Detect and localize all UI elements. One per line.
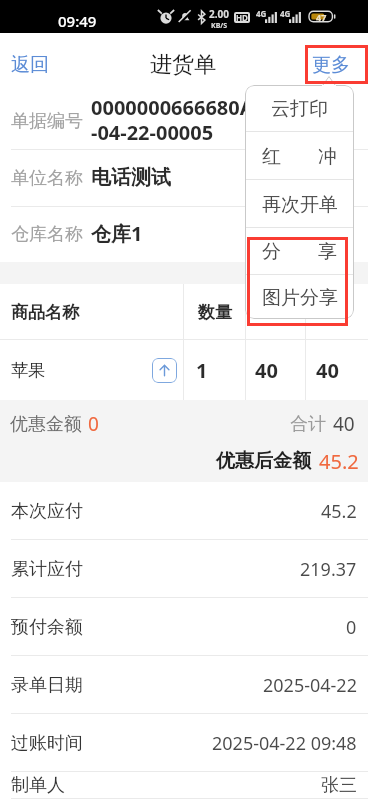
staticText: 苹果 xyxy=(11,360,45,381)
button[interactable]: 更多 xyxy=(306,46,356,84)
staticText: 0000000666680A -04-22-00005 xyxy=(91,94,254,146)
staticText: 数量 xyxy=(198,302,232,323)
button[interactable]: 分 xyxy=(245,228,354,274)
staticText: 返回 xyxy=(11,53,49,77)
staticText: 仓库1 xyxy=(91,220,143,247)
staticText: 45.2 xyxy=(319,448,359,475)
staticText: KB/S xyxy=(211,21,228,31)
staticText: 制单人 xyxy=(11,774,65,797)
button[interactable]: 累计应付 xyxy=(0,540,368,598)
staticText: 单位名称 xyxy=(11,167,91,190)
button[interactable]: 本次应付 xyxy=(0,482,368,540)
staticText: 进货单 xyxy=(150,51,216,79)
staticText: 优惠后金额 xyxy=(216,449,311,473)
staticText: 享 xyxy=(318,240,337,264)
staticText: 单据编号 xyxy=(11,110,91,133)
staticText: 分 xyxy=(262,240,281,264)
staticText: 4G xyxy=(256,8,267,19)
staticText: 冲 xyxy=(318,145,337,169)
button[interactable]: 录单日期 xyxy=(0,656,368,714)
staticText: 40 xyxy=(333,411,355,437)
staticText: 0 xyxy=(346,615,357,640)
staticText: 再次开单 xyxy=(262,193,338,217)
staticText: 40 xyxy=(255,357,278,384)
button[interactable]: 预付余额 xyxy=(0,598,368,656)
button[interactable]: 返回 xyxy=(0,43,61,87)
staticText: 优惠金额 xyxy=(10,413,82,436)
button[interactable]: 制单人 xyxy=(0,772,368,799)
staticText: 本次应付 xyxy=(11,500,83,523)
staticText: HD xyxy=(236,12,248,23)
staticText: 张三 xyxy=(321,774,357,797)
button[interactable]: 再次开单 xyxy=(245,180,354,227)
button[interactable]: 图片分享 xyxy=(245,275,354,319)
staticText: 40 xyxy=(316,357,339,384)
staticText: 云打印 xyxy=(271,97,328,121)
staticText: 219.37 xyxy=(300,557,357,582)
staticText: 45.2 xyxy=(321,499,357,524)
staticText: 预付余额 xyxy=(11,616,83,639)
staticText: 红 xyxy=(262,145,281,169)
staticText: 合计 xyxy=(290,413,326,436)
button[interactable]: 展开 xyxy=(152,358,177,383)
staticText: 仓库名称 xyxy=(11,223,91,246)
button[interactable]: 云打印 xyxy=(245,85,354,131)
button[interactable]: 红 xyxy=(245,132,354,179)
staticText: 47 xyxy=(316,11,327,23)
staticText: 商品名称 xyxy=(11,302,79,323)
staticText: 更多 xyxy=(312,53,350,77)
staticText: 0 xyxy=(88,411,99,437)
staticText: 过账时间 xyxy=(11,732,83,755)
staticText: 2025-04-22 xyxy=(263,673,357,698)
staticText: 2.00 xyxy=(209,7,229,21)
staticText: 累计应付 xyxy=(11,558,83,581)
staticText: 2025-04-22 09:48 xyxy=(212,731,357,756)
staticText: 录单日期 xyxy=(11,674,83,697)
staticText: 09:49 xyxy=(58,11,97,31)
staticText: 电话测试 xyxy=(91,165,171,190)
staticText: 1 xyxy=(196,357,208,384)
staticText: 4G xyxy=(280,8,291,19)
button[interactable]: 过账时间 xyxy=(0,714,368,772)
staticText: 图片分享 xyxy=(262,286,338,310)
